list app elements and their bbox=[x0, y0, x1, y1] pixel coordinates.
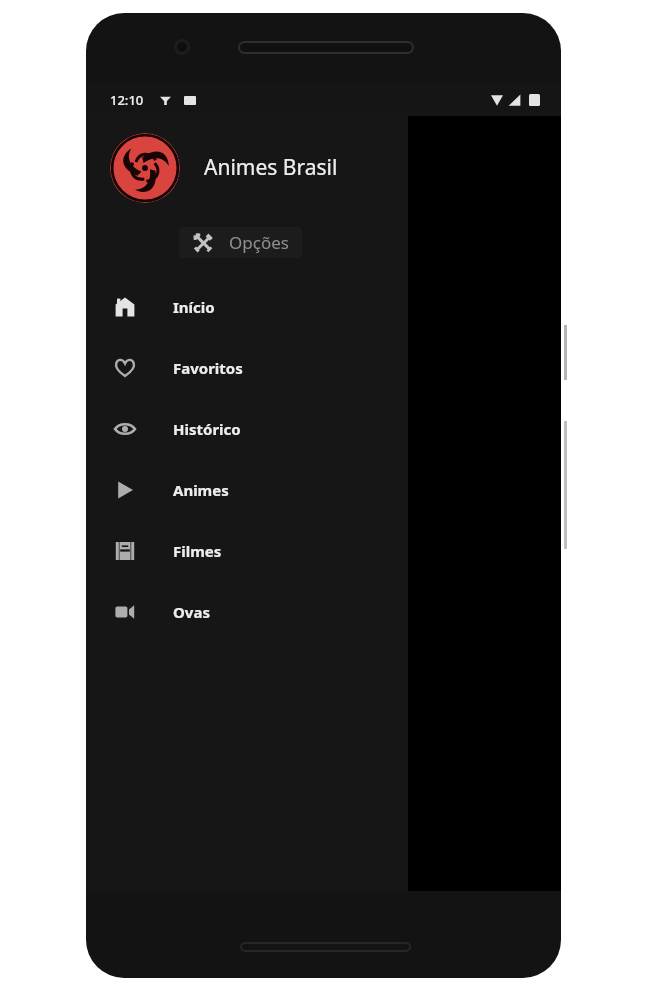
other: Bateria bbox=[529, 94, 540, 106]
staticText: Filmes bbox=[173, 541, 222, 561]
button[interactable]: Animes bbox=[86, 459, 408, 520]
other: Logotipo Animes Brasil bbox=[110, 133, 180, 203]
other: Início bbox=[115, 297, 135, 317]
other: Wi-Fi bbox=[491, 94, 503, 106]
staticText: Início bbox=[173, 297, 215, 317]
button[interactable]: Opções bbox=[179, 227, 302, 258]
other: Histórico bbox=[115, 419, 135, 439]
staticText: Animes bbox=[173, 480, 229, 500]
staticText: Opções bbox=[229, 231, 289, 254]
staticText: Favoritos bbox=[173, 358, 243, 378]
button[interactable]: Histórico bbox=[86, 398, 408, 459]
other: Animes bbox=[115, 480, 135, 500]
staticText: Histórico bbox=[173, 419, 241, 439]
button[interactable]: Início bbox=[86, 276, 408, 337]
other: Favoritos bbox=[115, 358, 135, 378]
staticText: 12:10 bbox=[110, 91, 144, 109]
staticText: Ovas bbox=[173, 602, 210, 622]
button[interactable]: Ovas bbox=[86, 581, 408, 642]
button[interactable]: Favoritos bbox=[86, 337, 408, 398]
staticText: Animes Brasil bbox=[204, 153, 338, 182]
other: Sinal bbox=[508, 94, 521, 106]
button[interactable]: Filmes bbox=[86, 520, 408, 581]
button[interactable]: Logotipo Animes Brasil bbox=[86, 126, 408, 210]
other: Ovas bbox=[115, 602, 135, 622]
other: Filmes bbox=[115, 541, 135, 561]
